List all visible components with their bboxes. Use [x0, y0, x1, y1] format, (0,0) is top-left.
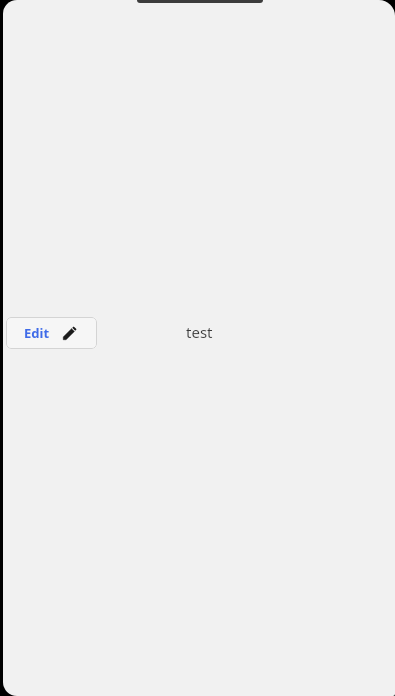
button[interactable]: Edit — [6, 317, 97, 349]
staticText: test — [186, 322, 213, 342]
staticText: Edit — [24, 324, 50, 342]
other: Edit — [61, 324, 79, 342]
